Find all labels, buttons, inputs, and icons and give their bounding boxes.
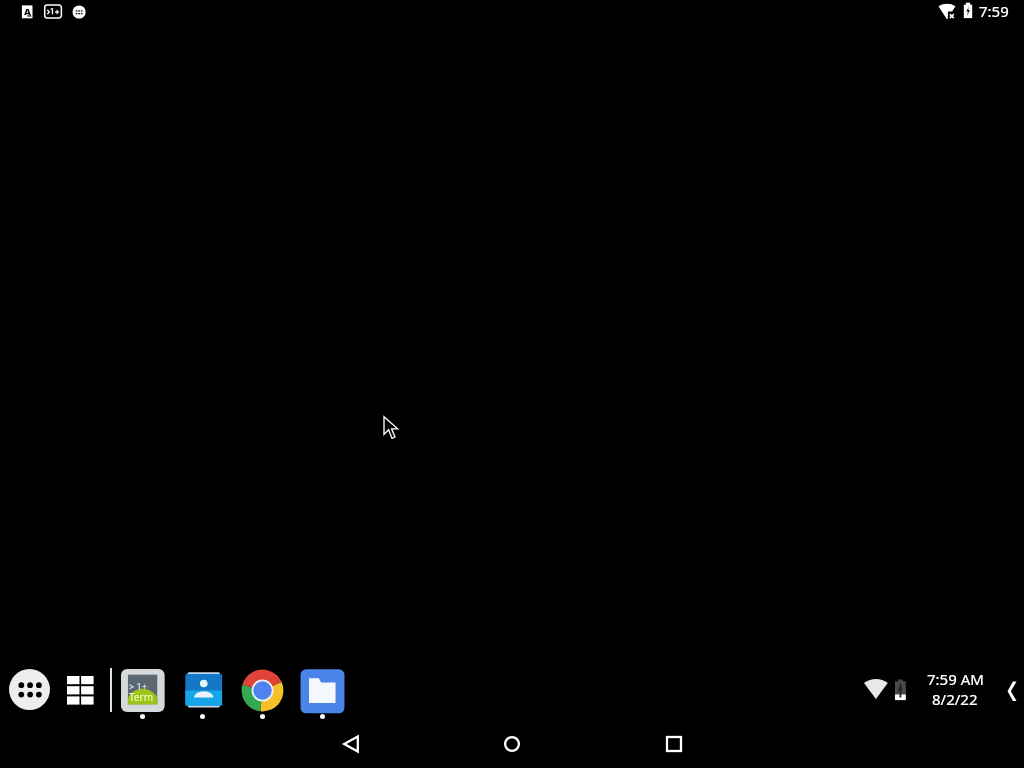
- button[interactable]: App grid: [67, 676, 94, 705]
- button[interactable]: Home: [490, 722, 534, 766]
- button[interactable]: Recent apps: [652, 722, 696, 766]
- button[interactable]: All apps: [9, 669, 50, 710]
- button[interactable]: Collapse taskbar: [1000, 673, 1024, 709]
- button[interactable]: Back: [329, 722, 373, 766]
- button[interactable]: Files: [300, 668, 345, 713]
- staticText: 8/2/22: [932, 689, 978, 709]
- staticText: 7:59: [979, 1, 1009, 21]
- button[interactable]: 7:59 AM: [920, 666, 990, 710]
- staticText: A: [24, 5, 31, 18]
- staticText: 7:59 AM: [927, 669, 984, 689]
- staticText: > 1+: [129, 680, 147, 692]
- button[interactable]: Chrome: [240, 668, 285, 713]
- button[interactable]: Contacts: [180, 668, 225, 713]
- button[interactable]: Terminal: [120, 668, 165, 713]
- button[interactable]: Wi-Fi and battery: [861, 674, 911, 706]
- staticText: Term: [129, 690, 153, 704]
- button[interactable]: Notifications: [18, 0, 90, 24]
- button[interactable]: System status: [934, 0, 1014, 24]
